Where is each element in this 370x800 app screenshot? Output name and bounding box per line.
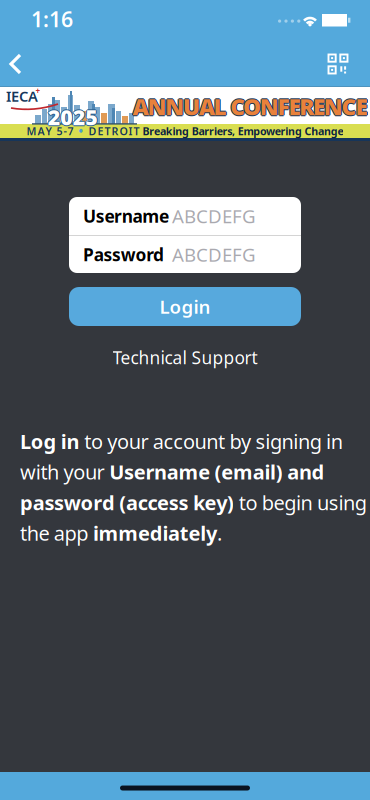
button[interactable]: Login [69,287,301,326]
staticText: Password [83,243,164,266]
staticText: • [78,123,83,139]
staticText: ABCDEFG [172,242,256,267]
staticText: MAY 5-7 [26,124,73,138]
staticText: Username [83,204,169,227]
staticText: ANNUAL CONFERENCE [132,91,366,121]
staticText: Breaking Barriers, Empowering Change [142,124,343,138]
staticText: . [217,520,222,546]
staticText: 2025 [47,103,97,131]
staticText: ANNUAL CONFERENCE [133,91,367,121]
staticText: ANNUAL CONFERENCE [133,90,367,120]
staticText: ABCDEFG [172,204,256,228]
button[interactable]: Password [69,236,301,273]
staticText: Log in [20,428,79,455]
staticText: DETROIT [88,124,139,138]
staticText: to begin using [234,489,367,516]
staticText: to your account by signing in [79,428,343,455]
staticText: Technical Support [112,346,257,369]
staticText: 2025 [49,103,99,131]
staticText: 2025 [48,104,98,132]
staticText: immediately [93,520,217,546]
staticText: ANNUAL CONFERENCE [133,92,367,122]
button[interactable]: Technical Support [112,346,257,369]
staticText: with your [20,459,109,485]
staticText: Username (email) and [109,459,325,485]
staticText: + [35,86,40,96]
staticText: 1:16 [31,5,73,33]
staticText: ANNUAL CONFERENCE [134,91,368,121]
staticText: 2025 [48,102,98,130]
staticText: the app [20,520,93,546]
button[interactable]: Back [4,50,34,78]
button[interactable]: Scan QR code [327,53,348,74]
staticText: password (access key) [20,489,234,516]
staticText: 2025 [48,103,98,131]
staticText: Login [159,294,210,319]
staticText: IECA [6,86,38,106]
button[interactable]: Username [69,197,301,235]
